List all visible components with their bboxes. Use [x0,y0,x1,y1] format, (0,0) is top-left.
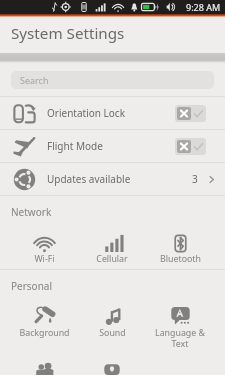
button[interactable]: Wi-Fi [11,228,78,265]
staticText: System Settings [11,23,125,44]
staticText: Bluetooth [160,253,201,265]
staticText: Cellular [96,253,128,265]
button[interactable]: Cellular [78,228,146,265]
button[interactable]: Language & Text [146,302,214,350]
staticText: Wi-Fi [34,253,55,265]
staticText: Orientation Lock [47,106,126,120]
button[interactable]: Flight Mode [0,130,225,162]
staticText: Flight Mode [47,139,103,153]
button[interactable]: Sound [78,302,146,339]
staticText: Background [19,327,70,339]
staticText: Language & Text [155,327,205,350]
button[interactable]: Toggle [175,138,206,155]
button[interactable]: Orientation Lock [0,97,225,129]
staticText: Sound [99,327,126,339]
staticText: Updates available [47,172,131,186]
button[interactable]: Toggle [175,105,206,122]
button[interactable]: Accounts [34,363,56,375]
staticText: Network [11,205,52,219]
staticText: 3 [192,172,198,186]
button[interactable]: Updates available [0,163,225,195]
staticText: 9:28 AM [186,1,221,13]
staticText: Personal [11,279,53,293]
button[interactable]: Bluetooth [146,228,214,265]
button[interactable]: Search [11,71,214,89]
button[interactable]: Security and Privacy [101,363,123,375]
button[interactable]: Background [11,302,78,339]
staticText: Search [20,74,49,86]
